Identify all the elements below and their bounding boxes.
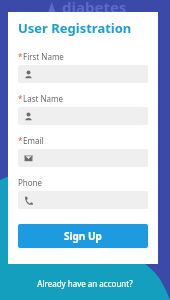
button[interactable]: Phone: [18, 191, 148, 209]
button[interactable]: Last Name: [18, 107, 148, 125]
button[interactable]: Sign Up: [18, 224, 148, 248]
staticText: diabetes: [62, 0, 127, 17]
staticText: Email: [23, 135, 44, 146]
staticText: Phone: [18, 177, 43, 188]
staticText: First Name: [23, 51, 64, 62]
staticText: Last Name: [23, 93, 64, 104]
button[interactable]: Email: [18, 149, 148, 167]
staticText: *: [18, 51, 23, 62]
staticText: *: [18, 93, 23, 104]
staticText: Already have an account?: [37, 278, 133, 289]
button[interactable]: First Name: [18, 65, 148, 83]
staticText: *: [18, 135, 23, 146]
staticText: User Registration: [18, 19, 132, 37]
button[interactable]: Already have an account?: [37, 278, 133, 289]
staticText: Sign Up: [64, 229, 102, 243]
